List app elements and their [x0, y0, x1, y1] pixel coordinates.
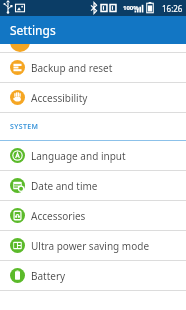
staticText: Date and time — [31, 179, 98, 193]
button[interactable]: Date and time — [0, 171, 186, 200]
button[interactable]: Battery — [0, 261, 186, 290]
staticText: Ultra power saving mode — [31, 239, 150, 253]
staticText: 100% — [123, 4, 139, 12]
staticText: 16:26 — [162, 3, 183, 14]
button[interactable]: Accessories — [0, 201, 186, 230]
staticText: Language and input — [31, 149, 126, 163]
button[interactable]: Language and input — [0, 141, 186, 170]
staticText: Accessibility — [31, 91, 88, 105]
staticText: SYSTEM — [10, 122, 39, 132]
button[interactable]: Ultra power saving mode — [0, 231, 186, 260]
staticText: Settings — [10, 22, 56, 38]
staticText: Battery — [31, 269, 66, 283]
button[interactable]: Accessibility — [0, 83, 186, 112]
staticText: Accessories — [31, 209, 86, 223]
button[interactable] — [0, 44, 186, 52]
button[interactable]: Backup and reset — [0, 53, 186, 82]
staticText: Backup and reset — [31, 61, 113, 75]
